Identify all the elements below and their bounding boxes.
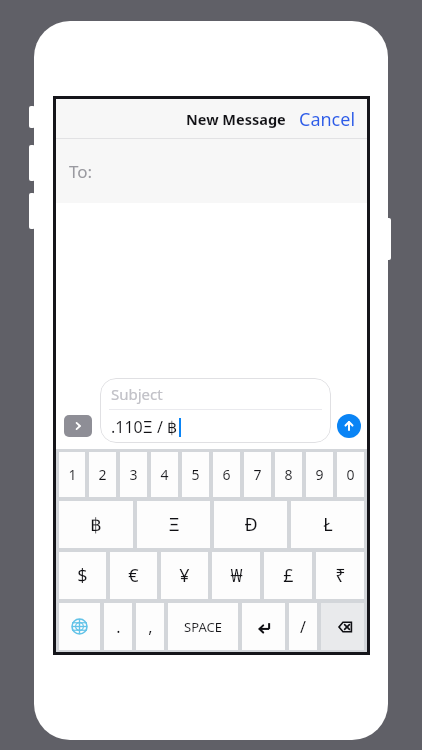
staticText: Ł <box>323 512 333 537</box>
staticText: / <box>300 616 306 638</box>
staticText: 3 <box>129 465 138 484</box>
staticText: Subject <box>111 384 163 404</box>
staticText: Đ <box>244 512 258 537</box>
button[interactable]: Expand toolbar <box>64 415 92 437</box>
button[interactable]: Change keyboard language <box>59 603 100 650</box>
staticText: To: <box>69 160 93 183</box>
staticText: ₩ <box>230 563 243 588</box>
staticText: € <box>128 563 139 588</box>
button[interactable]: 4 <box>151 452 178 497</box>
button[interactable]: , <box>136 603 164 650</box>
staticText: SPACE <box>184 618 222 636</box>
button[interactable]: 7 <box>244 452 271 497</box>
button[interactable]: 8 <box>275 452 302 497</box>
staticText: . <box>116 616 121 638</box>
staticText: 9 <box>315 465 324 484</box>
button[interactable]: SPACE <box>168 603 238 650</box>
staticText: £ <box>283 563 294 588</box>
staticText: 2 <box>98 465 107 484</box>
staticText: ₹ <box>335 563 346 588</box>
button[interactable]: Subject <box>100 378 331 443</box>
button[interactable]: 9 <box>306 452 333 497</box>
staticText: Cancel <box>299 107 356 132</box>
staticText: 0 <box>346 465 355 484</box>
staticText: New Message <box>186 109 286 129</box>
staticText: ฿ <box>90 514 102 535</box>
staticText: .110Ξ / ฿ <box>111 416 178 438</box>
button[interactable]: $ <box>59 552 106 599</box>
button[interactable]: ¥ <box>161 552 208 599</box>
button[interactable]: Send <box>337 414 361 438</box>
button[interactable]: 6 <box>213 452 240 497</box>
button[interactable]: 5 <box>182 452 209 497</box>
button[interactable]: £ <box>264 552 312 599</box>
button[interactable]: 1 <box>59 452 85 497</box>
staticText: Ξ <box>168 512 180 537</box>
button[interactable]: 0 <box>337 452 364 497</box>
button[interactable]: ฿ <box>59 501 133 548</box>
button[interactable]: ₩ <box>212 552 260 599</box>
button[interactable]: € <box>110 552 157 599</box>
button[interactable]: . <box>104 603 132 650</box>
staticText: 1 <box>68 465 77 484</box>
staticText: 7 <box>253 465 262 484</box>
staticText: 8 <box>284 465 293 484</box>
staticText: 6 <box>222 465 231 484</box>
button[interactable]: Backspace <box>321 603 364 650</box>
button[interactable]: Ξ <box>137 501 210 548</box>
button[interactable]: Đ <box>214 501 287 548</box>
staticText: , <box>148 616 153 638</box>
staticText: ¥ <box>179 563 190 588</box>
staticText: 4 <box>160 465 169 484</box>
button[interactable]: To: <box>56 139 367 203</box>
button[interactable]: Ł <box>291 501 364 548</box>
button[interactable]: Return <box>242 603 285 650</box>
button[interactable]: 3 <box>120 452 147 497</box>
button[interactable]: Cancel <box>299 107 356 132</box>
button[interactable]: ₹ <box>316 552 364 599</box>
staticText: 5 <box>191 465 200 484</box>
staticText: $ <box>77 563 88 588</box>
button[interactable]: / <box>289 603 317 650</box>
button[interactable]: 2 <box>89 452 116 497</box>
